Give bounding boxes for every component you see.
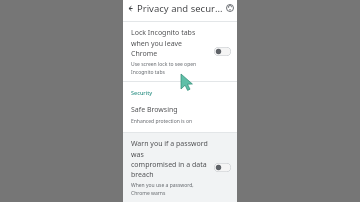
button[interactable]: Help and feedback	[223, 1, 237, 15]
button[interactable]: Warn you if a password was compromised i…	[123, 133, 237, 202]
button[interactable]: Safe Browsing	[123, 98, 237, 132]
staticText: When you use a password, Chrome warns yo…	[131, 182, 209, 196]
button[interactable]: Back	[123, 1, 137, 15]
staticText: Enhanced protection is on	[131, 118, 193, 125]
staticText: Safe Browsing	[131, 105, 178, 115]
button[interactable]: Toggle	[214, 47, 231, 56]
staticText: Lock Incognito tabs when you leave Chrom…	[131, 28, 208, 58]
staticText: Use screen lock to see open Incognito ta…	[131, 61, 208, 75]
staticText: Privacy and security	[137, 2, 223, 15]
button[interactable]: Toggle	[214, 163, 231, 172]
staticText: Warn you if a password was compromised i…	[131, 139, 209, 179]
staticText: Security	[131, 89, 153, 96]
button[interactable]: Lock Incognito tabs when you leave Chrom…	[123, 22, 237, 81]
